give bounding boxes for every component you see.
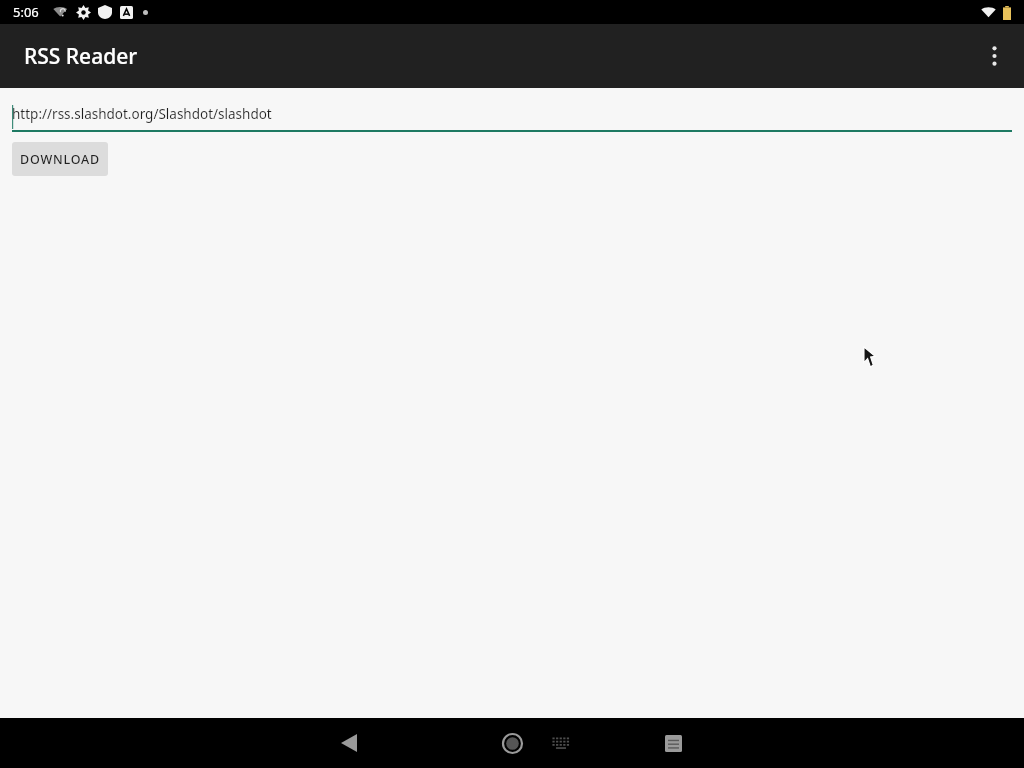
staticText: 5:06 xyxy=(13,3,39,21)
staticText: DOWNLOAD xyxy=(20,151,100,168)
button[interactable]: Recent apps xyxy=(649,719,697,767)
button[interactable]: Home xyxy=(488,719,536,767)
staticText: RSS Reader xyxy=(24,42,138,71)
staticText: http://rss.slashdot.org/Slashdot/slashdo… xyxy=(12,105,272,123)
button[interactable]: http://rss.slashdot.org/Slashdot/slashdo… xyxy=(12,105,1012,133)
button[interactable]: Back xyxy=(325,719,373,767)
button[interactable]: More options xyxy=(970,32,1018,80)
button[interactable]: DOWNLOAD xyxy=(12,142,108,176)
button[interactable]: Switch keyboard xyxy=(541,723,581,763)
